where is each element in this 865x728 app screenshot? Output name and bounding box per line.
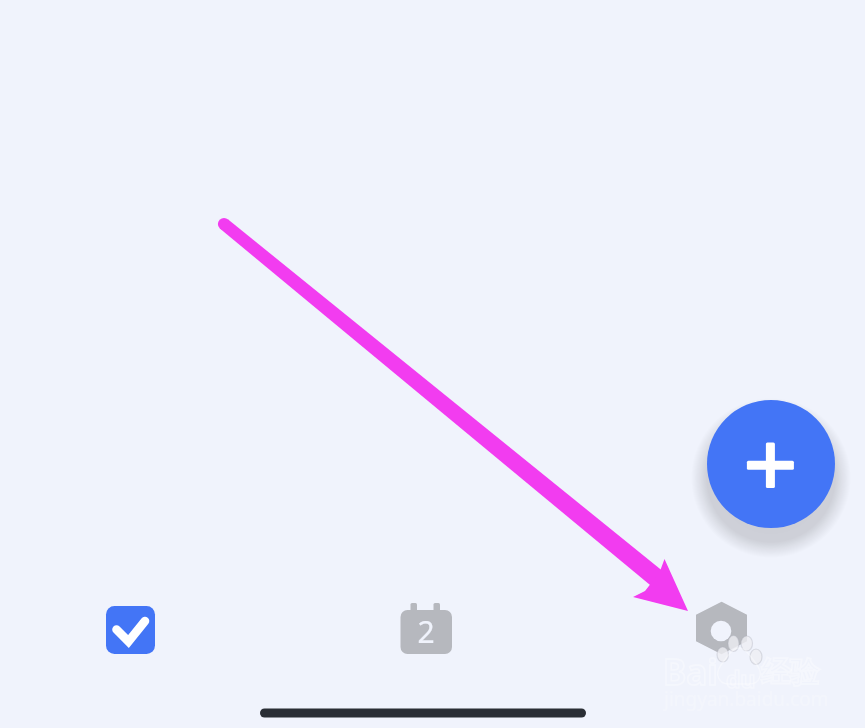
- button[interactable]: Settings: [689, 598, 754, 662]
- button[interactable]: Tasks: [98, 598, 163, 662]
- button[interactable]: Calendar: [394, 598, 459, 662]
- button[interactable]: Add task: [707, 400, 835, 528]
